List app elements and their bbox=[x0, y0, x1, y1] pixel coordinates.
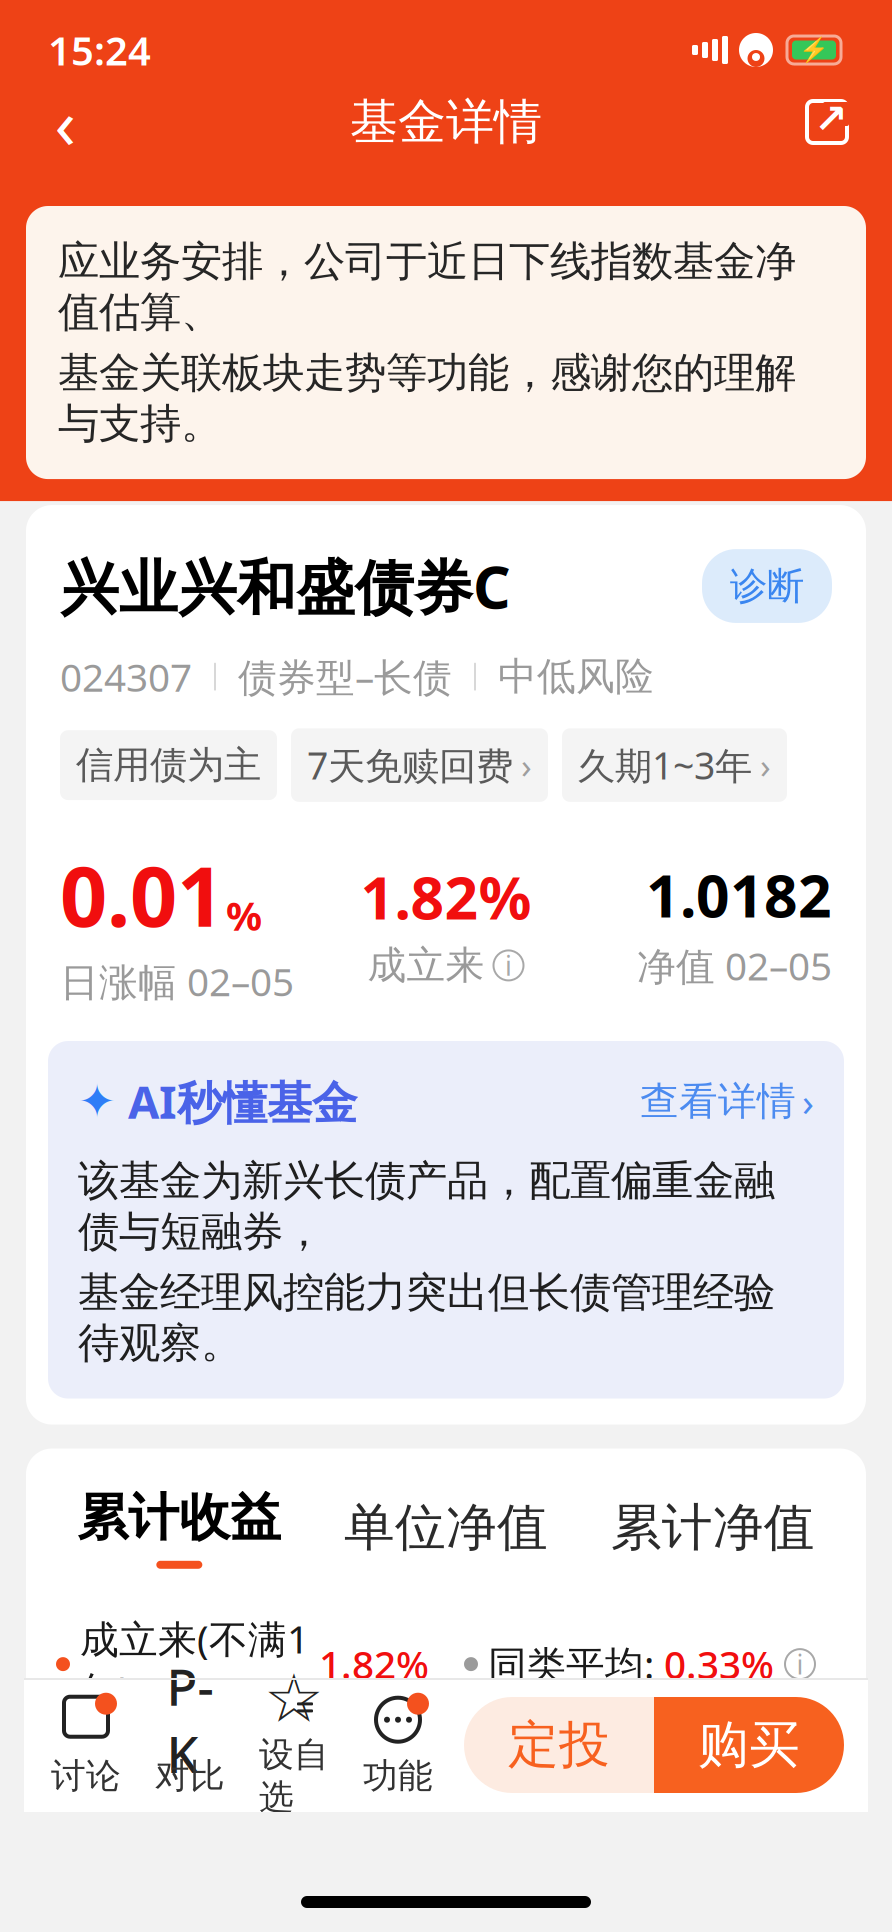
button[interactable]: ☆ bbox=[242, 1690, 346, 1800]
button[interactable]: 返回 bbox=[30, 87, 100, 157]
button[interactable]: 累计净值 bbox=[579, 1496, 846, 1559]
button[interactable]: 单位净值 bbox=[313, 1496, 579, 1559]
button[interactable]: 购买 bbox=[654, 1697, 844, 1793]
button[interactable]: 定投 bbox=[464, 1697, 654, 1793]
staticText: 基金经理风控能力突出但长债管理经验待观察。 bbox=[78, 1267, 775, 1368]
staticText: 兴业兴和盛债券C bbox=[60, 547, 511, 625]
staticText: 购买 bbox=[698, 1714, 800, 1776]
button[interactable]: 讨论 bbox=[34, 1690, 138, 1800]
staticText: 累计收益 bbox=[77, 1486, 281, 1549]
staticText: 最大回撤(成立来): bbox=[488, 1737, 734, 1840]
staticText: 讨论 bbox=[51, 1755, 121, 1797]
staticText: 基金关联板块走势等功能，感谢您的理解与支持。 bbox=[58, 347, 796, 449]
staticText: 该基金为新兴长债产品，配置偏重金融债与短融券， bbox=[78, 1155, 775, 1257]
button[interactable]: ✦ bbox=[48, 1041, 844, 1398]
staticText: 同类平均: bbox=[488, 1638, 654, 1690]
staticText: ‹ bbox=[54, 76, 75, 168]
staticText: 对比 bbox=[155, 1755, 225, 1797]
staticText: 债券型–长债 bbox=[238, 651, 452, 702]
staticText: ↗ bbox=[814, 96, 848, 142]
staticText: i bbox=[796, 1646, 803, 1682]
staticText: 7天免赎回费 bbox=[307, 740, 513, 790]
staticText: 定投 bbox=[508, 1714, 610, 1776]
staticText: PK bbox=[166, 1652, 213, 1787]
staticText: 诊断 bbox=[730, 563, 804, 609]
button[interactable]: 7天免赎回费 bbox=[291, 728, 548, 802]
staticText: –0.35% bbox=[256, 1763, 385, 1814]
staticText: 中证全债: bbox=[80, 1763, 246, 1814]
staticText: 1.82% bbox=[360, 858, 531, 936]
staticText: 成立来 bbox=[367, 942, 484, 989]
staticText: 累计净值 bbox=[611, 1496, 815, 1559]
staticText: 信用债为主 bbox=[76, 742, 261, 788]
staticText: › bbox=[521, 742, 532, 788]
staticText: 1.82% bbox=[319, 1638, 429, 1690]
button[interactable]: 功能 bbox=[346, 1690, 450, 1800]
staticText: › bbox=[802, 1076, 814, 1127]
button[interactable]: 累计收益 bbox=[77, 1486, 281, 1549]
staticText: 应业务安排，公司于近日下线指数基金净值估算、 bbox=[58, 236, 796, 337]
staticText: 024307 bbox=[60, 651, 192, 702]
staticText: 功能 bbox=[363, 1755, 433, 1797]
staticText: 久期1~3年 bbox=[578, 740, 752, 790]
staticText: i bbox=[505, 948, 512, 983]
button[interactable]: 分享 bbox=[792, 87, 862, 157]
staticText: 单位净值 bbox=[344, 1496, 548, 1559]
staticText: ⚡ bbox=[799, 36, 829, 64]
staticText: 中低风险 bbox=[498, 653, 654, 700]
staticText: › bbox=[760, 742, 771, 788]
staticText: 日涨幅 02–05 bbox=[60, 956, 294, 1007]
staticText: 1.0182 bbox=[646, 856, 832, 934]
staticText: 0.01 bbox=[60, 840, 224, 950]
button[interactable]: 久期1~3年 bbox=[562, 728, 787, 802]
staticText: ▾ bbox=[395, 1771, 411, 1807]
staticText: 净值 02–05 bbox=[637, 940, 832, 991]
staticText: 成立来(不满1年): bbox=[80, 1613, 309, 1715]
staticText: AI秒懂基金 bbox=[116, 1071, 357, 1131]
staticText: 0.33% bbox=[664, 1638, 774, 1690]
staticText: 查看详情 bbox=[640, 1077, 796, 1125]
staticText: 0.03% bbox=[744, 1763, 854, 1814]
staticText: 基金详情 bbox=[350, 92, 542, 151]
staticText: % bbox=[226, 889, 262, 942]
staticText: ☆ bbox=[264, 1661, 324, 1736]
staticText: 设自选 bbox=[259, 1733, 329, 1819]
staticText: 15:24 bbox=[48, 23, 151, 76]
staticText: ✦ bbox=[78, 1075, 116, 1127]
button[interactable]: PK bbox=[138, 1690, 242, 1800]
button[interactable]: 诊断 bbox=[702, 549, 832, 623]
